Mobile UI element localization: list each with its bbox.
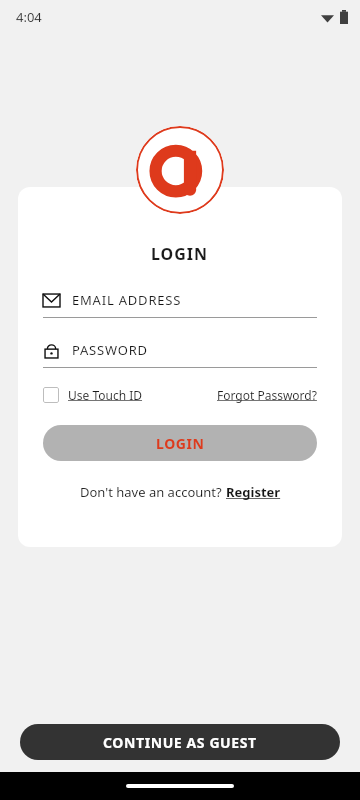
staticText: Don't have an account? xyxy=(80,483,226,501)
staticText: PASSWORD xyxy=(72,341,148,359)
staticText: EMAIL ADDRESS xyxy=(72,291,182,309)
staticText: 4:04 xyxy=(16,8,42,26)
button[interactable]: LOGIN xyxy=(43,425,317,461)
button[interactable]: CONTINUE AS GUEST xyxy=(20,724,340,760)
button[interactable]: Forgot Password? xyxy=(217,387,317,403)
staticText: LOGIN xyxy=(156,434,205,453)
staticText: CONTINUE AS GUEST xyxy=(103,733,257,752)
button[interactable]: Use Touch ID xyxy=(43,387,143,403)
staticText: Register xyxy=(226,483,281,501)
button[interactable]: Password xyxy=(43,341,317,368)
other: Password xyxy=(43,342,60,359)
staticText: Use Touch ID xyxy=(68,387,143,403)
staticText: LOGIN xyxy=(151,243,209,265)
other: Email xyxy=(43,292,60,309)
button[interactable]: Don't have an account? xyxy=(80,483,281,501)
button[interactable]: Email xyxy=(43,291,317,318)
